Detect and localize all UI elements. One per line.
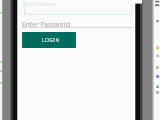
button[interactable]: LOGIN [22,32,76,48]
staticText: Enter Username [23,1,57,7]
button[interactable]: Enter Password [22,20,71,29]
staticText: LOGIN [42,36,60,43]
button[interactable] [22,0,132,16]
